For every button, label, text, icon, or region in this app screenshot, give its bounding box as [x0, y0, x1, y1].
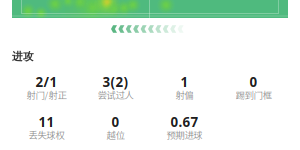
staticText: 0 [111, 113, 119, 131]
staticText: 进攻 [12, 50, 34, 63]
staticText: 0.67 [170, 113, 198, 131]
staticText: 预期进球 [166, 128, 202, 141]
staticText: 3(2) [102, 73, 128, 91]
staticText: 射偏 [175, 88, 193, 101]
staticText: 踢到门框 [235, 88, 271, 101]
staticText: 1 [180, 73, 188, 91]
staticText: 11 [38, 113, 54, 131]
staticText: 越位 [106, 128, 124, 141]
staticText: 0 [249, 73, 257, 91]
staticText: 射门/射正 [26, 88, 66, 101]
staticText: 尝试过人 [97, 88, 133, 101]
staticText: 丢失球权 [28, 128, 64, 141]
staticText: 2/1 [35, 73, 57, 91]
